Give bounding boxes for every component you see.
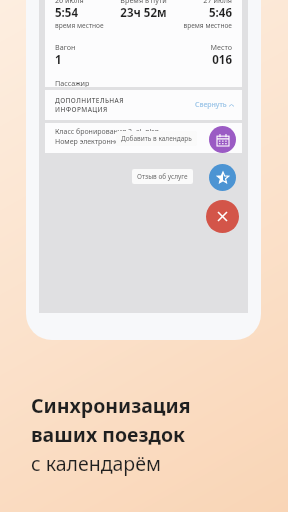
staticText: Добавить в календарь	[121, 134, 192, 143]
staticText: 5:46	[209, 5, 232, 21]
staticText: ИНФОРМАЦИЯ	[55, 105, 108, 114]
staticText: Время в пути	[120, 0, 167, 5]
staticText: Синхронизация	[31, 392, 191, 419]
staticText: ДОПОЛНИТЕЛЬНАЯ	[55, 96, 124, 105]
staticText: Пассажир	[55, 78, 90, 87]
button[interactable]: Закрыть	[206, 200, 239, 233]
staticText: Место	[210, 42, 232, 52]
staticText: 27 июля	[203, 0, 232, 5]
staticText: 016	[212, 52, 232, 68]
button[interactable]: Добавить в календарь	[209, 126, 236, 153]
staticText: 26 июля	[55, 0, 84, 5]
staticText: Вагон	[55, 42, 76, 52]
button[interactable]: Добавить в календарь	[121, 134, 192, 143]
staticText: ваших поездок	[31, 421, 186, 448]
staticText: 5:54	[55, 5, 78, 21]
staticText: Отзыв об услуге	[137, 172, 188, 181]
staticText: Свернуть	[195, 100, 227, 110]
staticText: с календарём	[31, 450, 161, 477]
staticText: 1	[55, 52, 62, 68]
staticText: 23ч 52м	[120, 5, 167, 21]
button[interactable]: Отзыв об услуге	[137, 172, 188, 181]
staticText: время местное	[55, 21, 104, 30]
staticText: Номер электронного билета	[55, 137, 152, 147]
button[interactable]: ДОПОЛНИТЕЛЬНАЯ	[45, 90, 242, 120]
button[interactable]: Отзыв об услуге	[209, 164, 236, 191]
staticText: Класс бронирования 2, el, nlsn	[55, 127, 159, 137]
staticText: время местное	[183, 21, 232, 30]
